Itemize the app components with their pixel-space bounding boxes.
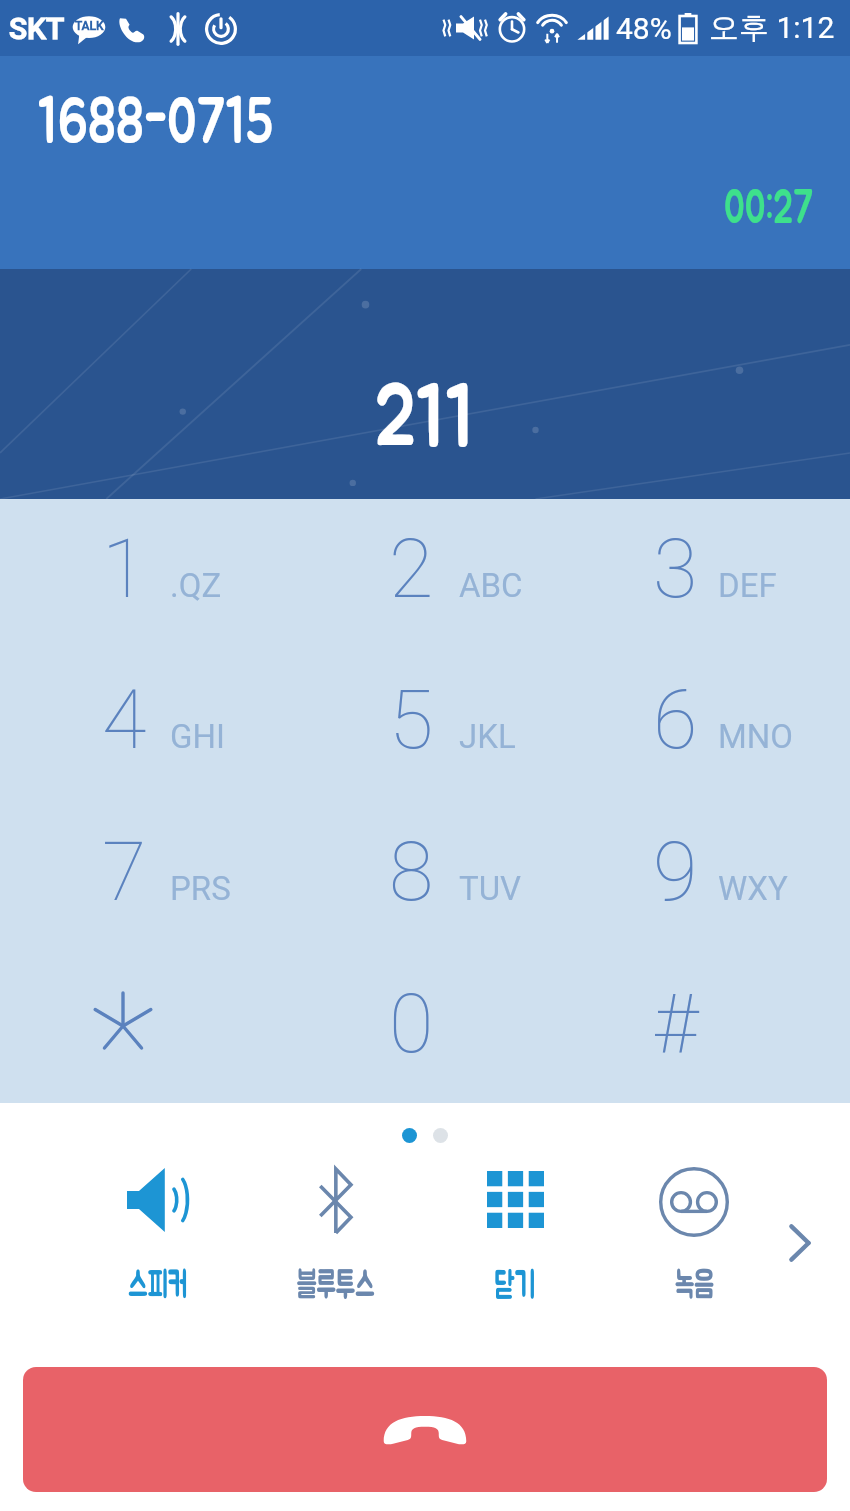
staticText: JKL: [459, 717, 516, 756]
staticText: 9: [653, 825, 698, 920]
staticText: TUV: [459, 869, 522, 908]
button[interactable]: 블루투스: [260, 1167, 410, 1317]
button[interactable]: 닫기: [440, 1167, 590, 1317]
staticText: 8: [389, 825, 434, 920]
staticText: 1688-0715: [38, 90, 274, 155]
staticText: ABC: [459, 566, 523, 605]
staticText: PRS: [170, 869, 231, 908]
button[interactable]: 스피커: [83, 1167, 233, 1317]
button[interactable]: 녹음: [619, 1167, 769, 1317]
staticText: #: [653, 977, 698, 1072]
staticText: TALK: [75, 19, 104, 33]
button[interactable]: 8: [283, 801, 566, 952]
button[interactable]: 4: [0, 650, 283, 801]
staticText: 5: [389, 673, 434, 768]
staticText: .QZ: [170, 566, 222, 605]
button[interactable]: 0: [283, 952, 566, 1103]
staticText: MNO: [718, 717, 794, 756]
staticText: 오후 1:12: [709, 9, 835, 47]
staticText: 6: [653, 673, 698, 768]
staticText: 1: [102, 522, 147, 617]
staticText: DEF: [718, 566, 777, 605]
staticText: 00:27: [724, 185, 814, 232]
staticText: 스피커: [128, 1268, 188, 1304]
staticText: 녹음: [675, 1268, 714, 1304]
staticText: 3: [653, 522, 698, 617]
button[interactable]: #: [567, 952, 850, 1103]
staticText: WXY: [718, 869, 788, 908]
button[interactable]: 3: [567, 499, 850, 650]
staticText: 7: [102, 825, 147, 920]
staticText: 48%: [616, 11, 672, 46]
button[interactable]: 9: [567, 801, 850, 952]
staticText: 블루투스: [296, 1268, 375, 1304]
staticText: GHI: [170, 717, 225, 756]
staticText: 2: [389, 522, 434, 617]
staticText: 211: [375, 377, 475, 464]
button[interactable]: 7: [0, 801, 283, 952]
button[interactable]: *: [0, 952, 283, 1103]
staticText: 0: [389, 977, 434, 1072]
staticText: 닫기: [494, 1268, 536, 1304]
button[interactable]: More options: [760, 1203, 840, 1283]
button[interactable]: End call: [23, 1367, 827, 1492]
staticText: SKT: [9, 11, 65, 46]
button[interactable]: 1: [0, 499, 283, 650]
button[interactable]: 6: [567, 650, 850, 801]
button[interactable]: 2: [283, 499, 566, 650]
button[interactable]: 5: [283, 650, 566, 801]
staticText: 4: [102, 673, 147, 768]
